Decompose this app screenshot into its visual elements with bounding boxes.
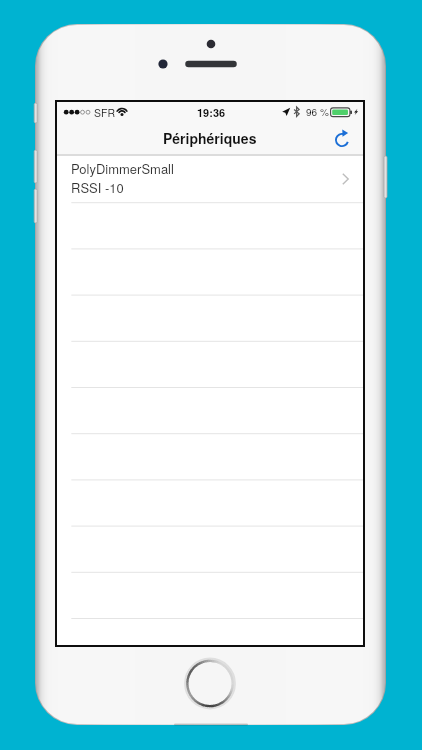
button[interactable]: Refresh (331, 129, 353, 151)
staticText: 19:36 (197, 105, 226, 121)
staticText: RSSI -10 (71, 178, 124, 197)
staticText: 96 % (306, 105, 329, 119)
staticText: SFR (94, 105, 115, 120)
staticText: Périphériques (163, 128, 257, 148)
button[interactable]: PolyDimmerSmall (57, 156, 363, 202)
staticText: PolyDimmerSmall (71, 159, 174, 178)
